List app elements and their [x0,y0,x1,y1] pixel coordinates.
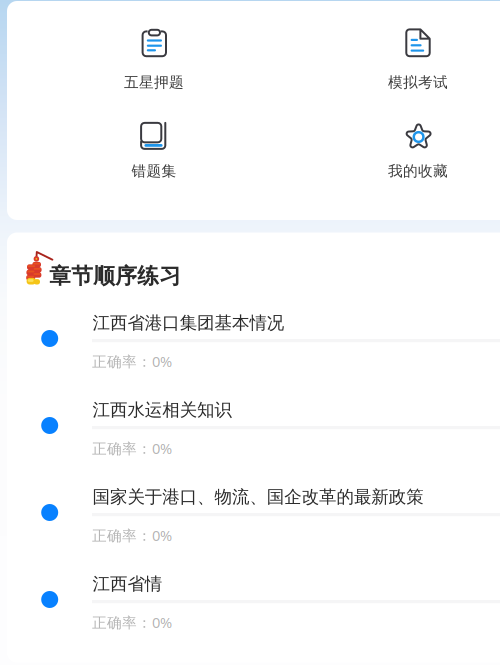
staticText: 正确率：0% [92,438,172,458]
staticText: 江西水运相关知识 [93,399,231,421]
button[interactable]: 模拟考试 [358,27,478,119]
staticText: 我的收藏 [388,162,448,180]
staticText: 国家关于港口、物流、国企改革的最新政策 [93,486,423,508]
button[interactable]: 五星押题 [94,27,214,119]
button[interactable]: 江西省港口集团基本情况 [7,305,500,392]
staticText: 正确率：0% [92,525,172,545]
button[interactable]: 江西水运相关知识 [7,392,500,479]
staticText: 正确率：0% [92,612,172,632]
button[interactable]: 错题集 [94,116,214,208]
staticText: 错题集 [131,162,176,180]
button[interactable]: 我的收藏 [358,116,478,208]
button[interactable]: 国家关于港口、物流、国企改革的最新政策 [7,479,500,566]
staticText: 江西省情 [93,573,162,595]
staticText: 江西省港口集团基本情况 [93,312,284,334]
button[interactable]: 江西省情 [7,566,500,653]
staticText: 章节顺序练习 [49,262,181,290]
staticText: 五星押题 [124,73,184,92]
staticText: 正确率：0% [92,351,172,371]
staticText: 模拟考试 [388,73,448,92]
